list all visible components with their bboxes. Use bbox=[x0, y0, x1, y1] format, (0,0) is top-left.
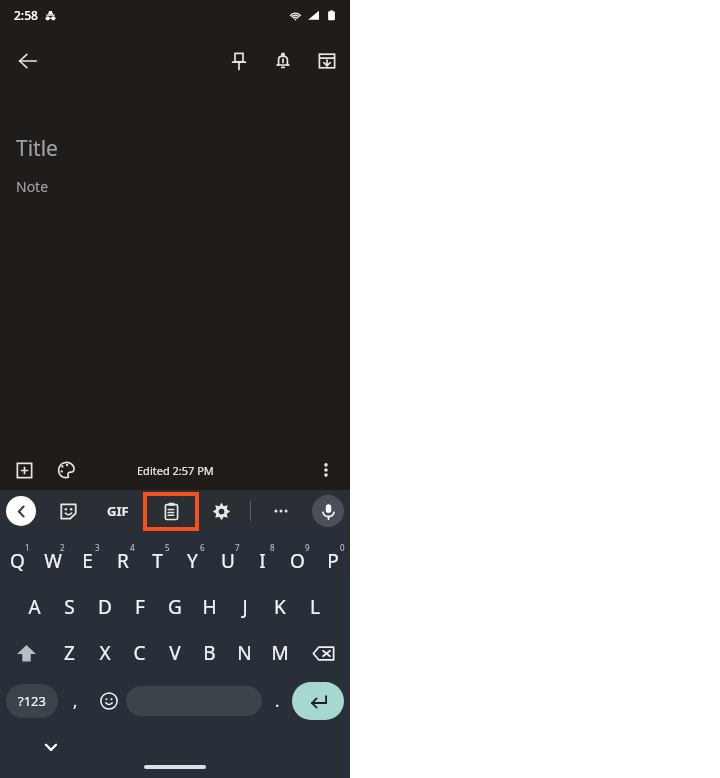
button[interactable]: , bbox=[58, 681, 92, 721]
button[interactable]: More options bbox=[312, 456, 340, 484]
button[interactable]: Y bbox=[175, 538, 210, 584]
button[interactable]: Space bbox=[126, 686, 262, 716]
button[interactable]: Q bbox=[0, 538, 35, 584]
staticText: D bbox=[98, 594, 112, 620]
staticText: 3 bbox=[95, 542, 100, 553]
button[interactable]: R bbox=[105, 538, 140, 584]
button[interactable]: T bbox=[140, 538, 175, 584]
staticText: Title bbox=[16, 134, 58, 163]
staticText: I bbox=[259, 548, 266, 574]
staticText: A bbox=[28, 594, 41, 620]
staticText: Note bbox=[16, 177, 49, 196]
button[interactable]: H bbox=[192, 584, 227, 630]
button[interactable]: E bbox=[70, 538, 105, 584]
button[interactable]: Color palette bbox=[52, 456, 80, 484]
staticText: X bbox=[99, 640, 111, 666]
button[interactable]: A bbox=[17, 584, 52, 630]
staticText: 2 bbox=[60, 542, 65, 553]
button[interactable]: Settings bbox=[205, 495, 237, 527]
staticText: . bbox=[275, 690, 280, 712]
staticText: H bbox=[202, 594, 217, 620]
button[interactable]: C bbox=[122, 630, 157, 676]
button[interactable]: I bbox=[245, 538, 280, 584]
button[interactable]: Pin bbox=[224, 46, 254, 76]
button[interactable]: Archive bbox=[312, 46, 342, 76]
button[interactable]: Shift bbox=[0, 630, 52, 676]
button[interactable]: J bbox=[227, 584, 262, 630]
button[interactable]: F bbox=[122, 584, 157, 630]
button[interactable]: Add bbox=[10, 456, 38, 484]
button[interactable]: W bbox=[35, 538, 70, 584]
staticText: 0 bbox=[340, 542, 345, 553]
button[interactable]: K bbox=[262, 584, 297, 630]
button[interactable]: Z bbox=[52, 630, 87, 676]
staticText: W bbox=[44, 548, 62, 574]
button[interactable]: X bbox=[87, 630, 122, 676]
staticText: U bbox=[221, 548, 235, 574]
staticText: 7 bbox=[235, 542, 240, 553]
staticText: J bbox=[242, 594, 248, 620]
button[interactable]: O bbox=[280, 538, 315, 584]
button[interactable]: Hide keyboard bbox=[36, 732, 66, 762]
staticText: O bbox=[290, 548, 305, 574]
button[interactable]: S bbox=[52, 584, 87, 630]
staticText: C bbox=[133, 640, 146, 666]
button[interactable]: Reminder bbox=[268, 46, 298, 76]
button[interactable]: V bbox=[157, 630, 192, 676]
staticText: B bbox=[203, 640, 216, 666]
staticText: S bbox=[64, 594, 75, 620]
button[interactable]: GIF bbox=[98, 495, 138, 527]
staticText: , bbox=[73, 690, 78, 712]
button[interactable]: Enter bbox=[292, 682, 344, 720]
button[interactable]: More bbox=[265, 495, 297, 527]
button[interactable]: M bbox=[262, 630, 297, 676]
staticText: P bbox=[327, 548, 339, 574]
button[interactable]: P bbox=[315, 538, 350, 584]
button[interactable]: ?123 bbox=[6, 684, 58, 718]
button[interactable]: Close toolbar bbox=[6, 496, 36, 526]
staticText: L bbox=[310, 594, 320, 620]
button[interactable]: Backspace bbox=[297, 630, 350, 676]
staticText: F bbox=[135, 594, 145, 620]
staticText: 2:58 bbox=[14, 7, 38, 23]
staticText: 8 bbox=[270, 542, 275, 553]
button[interactable]: . bbox=[262, 681, 292, 721]
button[interactable]: B bbox=[192, 630, 227, 676]
staticText: 6 bbox=[200, 542, 205, 553]
staticText: M bbox=[271, 640, 289, 666]
button[interactable]: U bbox=[210, 538, 245, 584]
button[interactable]: G bbox=[157, 584, 192, 630]
staticText: Y bbox=[187, 548, 198, 574]
button[interactable]: D bbox=[87, 584, 122, 630]
staticText: 4 bbox=[130, 542, 135, 553]
staticText: 5 bbox=[165, 542, 170, 553]
staticText: ?123 bbox=[18, 692, 46, 710]
button[interactable]: Back bbox=[6, 39, 50, 83]
staticText: R bbox=[117, 548, 129, 574]
staticText: Q bbox=[10, 548, 25, 574]
staticText: GIF bbox=[107, 502, 129, 520]
staticText: T bbox=[152, 548, 163, 574]
staticText: G bbox=[168, 594, 182, 620]
staticText: 1 bbox=[25, 542, 30, 553]
button[interactable]: N bbox=[227, 630, 262, 676]
button[interactable]: Clipboard bbox=[147, 496, 195, 527]
staticText: N bbox=[237, 640, 252, 666]
staticText: Edited 2:57 PM bbox=[137, 463, 214, 478]
staticText: E bbox=[82, 548, 93, 574]
button[interactable]: Voice input bbox=[312, 495, 344, 527]
staticText: K bbox=[274, 594, 286, 620]
staticText: V bbox=[169, 640, 181, 666]
button[interactable]: Stickers bbox=[52, 495, 84, 527]
button[interactable]: Emoji bbox=[92, 681, 126, 721]
staticText: 9 bbox=[305, 542, 310, 553]
button[interactable]: L bbox=[297, 584, 332, 630]
staticText: Z bbox=[64, 640, 75, 666]
